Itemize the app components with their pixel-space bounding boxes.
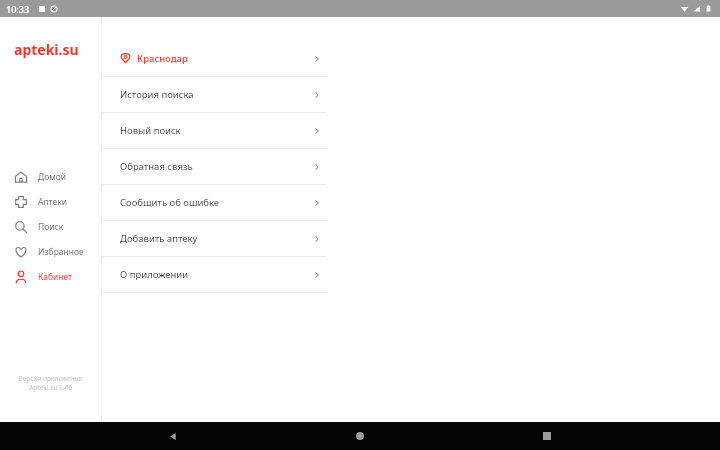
- staticText: Обратная связь: [120, 160, 193, 173]
- button[interactable]: Поиск: [0, 214, 101, 239]
- staticText: Сообщить об ошибке: [120, 196, 220, 209]
- staticText: Версия приложения: [18, 374, 83, 383]
- staticText: 10:33: [6, 3, 30, 15]
- staticText: Новый поиск: [120, 124, 181, 137]
- staticText: Избранное: [38, 246, 84, 258]
- button[interactable]: Домой: [0, 164, 101, 189]
- button[interactable]: История поиска: [102, 77, 326, 112]
- button[interactable]: Сообщить об ошибке: [102, 185, 326, 220]
- button[interactable]: Кабинет: [0, 264, 101, 289]
- button[interactable]: Избранное: [0, 239, 101, 264]
- button[interactable]: Home: [346, 422, 374, 450]
- staticText: apteki.su: [14, 40, 79, 59]
- button[interactable]: Краснодар: [102, 41, 326, 76]
- button[interactable]: Аптеки: [0, 189, 101, 214]
- staticText: Добавить аптеку: [120, 232, 198, 245]
- button[interactable]: Новый поиск: [102, 113, 326, 148]
- staticText: Краснодар: [137, 52, 188, 65]
- button[interactable]: Обратная связь: [102, 149, 326, 184]
- staticText: История поиска: [120, 88, 194, 101]
- staticText: Аптеки: [38, 196, 67, 208]
- staticText: Поиск: [38, 221, 64, 233]
- button[interactable]: О приложении: [102, 257, 326, 292]
- staticText: О приложении: [120, 268, 189, 281]
- staticText: Домой: [38, 171, 67, 183]
- staticText: Apteki.su 2.46: [29, 383, 72, 392]
- staticText: Кабинет: [38, 271, 73, 283]
- button[interactable]: Back: [159, 422, 187, 450]
- button[interactable]: Добавить аптеку: [102, 221, 326, 256]
- button[interactable]: Recents: [533, 422, 561, 450]
